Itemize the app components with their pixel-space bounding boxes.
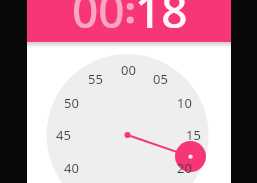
staticText: 05 <box>153 70 168 88</box>
staticText: 10 <box>177 94 192 112</box>
button[interactable]: 00 <box>68 0 128 21</box>
staticText: 18 <box>135 0 188 21</box>
staticText: 45 <box>56 126 71 144</box>
button[interactable]: 00 <box>112 61 144 79</box>
button[interactable]: 10 <box>168 94 200 112</box>
staticText: 20 <box>177 159 192 177</box>
button[interactable]: 20 <box>168 159 200 177</box>
button[interactable]: 05 <box>144 70 176 88</box>
staticText: 50 <box>64 94 79 112</box>
staticText: 40 <box>64 159 79 177</box>
button[interactable]: 55 <box>79 70 111 88</box>
staticText: 55 <box>88 70 103 88</box>
button[interactable]: 15 <box>177 126 209 144</box>
button[interactable]: 40 <box>55 159 87 177</box>
button[interactable]: 50 <box>55 94 87 112</box>
button[interactable]: 18 <box>131 0 191 21</box>
staticText: 00 <box>72 0 125 21</box>
staticText: 00 <box>121 61 136 79</box>
button[interactable] <box>27 0 231 183</box>
staticText: 15 <box>186 126 201 144</box>
button[interactable]: 45 <box>47 126 79 144</box>
